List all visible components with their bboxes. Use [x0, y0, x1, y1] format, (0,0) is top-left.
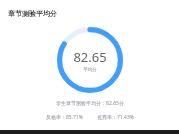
staticText: 学生章节测验平均分：82.65分: [56, 100, 124, 107]
staticText: 优秀率：71.43%: [97, 114, 134, 121]
button[interactable]: 章节测验平均分 82.65: [57, 27, 123, 93]
staticText: 及格率：85.71%: [46, 114, 83, 121]
staticText: 平均分: [83, 67, 97, 73]
staticText: 82.65: [73, 48, 107, 66]
staticText: 章节测验平均分: [8, 9, 57, 18]
